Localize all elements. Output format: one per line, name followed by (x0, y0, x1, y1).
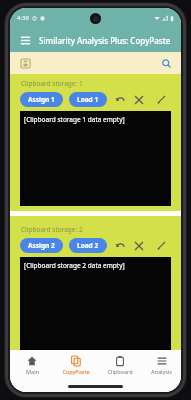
button[interactable]: [Clipboard storage 2 data empty] (20, 257, 171, 350)
staticText: 4:36 (17, 14, 29, 22)
staticText: Clipboard storage: 2 (21, 225, 83, 234)
button[interactable]: Main (10, 354, 54, 377)
button[interactable]: Search (159, 56, 173, 70)
staticText: [Clipboard storage 1 data empty] (24, 115, 125, 124)
staticText: Assign 1 (28, 95, 55, 104)
button[interactable]: Assign 2 (20, 238, 63, 253)
button[interactable]: CopyPaste (54, 354, 98, 377)
button[interactable]: Undo (114, 239, 127, 252)
button[interactable]: Clear (131, 238, 146, 253)
staticText: Analysis (151, 368, 172, 375)
button[interactable]: Analysis (142, 354, 181, 377)
staticText: [Clipboard storage 2 data empty] (24, 261, 125, 270)
staticText: Main (26, 368, 39, 375)
button[interactable]: Edit (154, 238, 169, 253)
staticText: Assign 2 (28, 241, 55, 250)
staticText: Load 1 (77, 95, 99, 104)
button[interactable]: Clear (131, 92, 146, 107)
button[interactable]: Load 2 (69, 238, 107, 253)
button[interactable]: Load 1 (69, 92, 107, 107)
button[interactable]: Assign 1 (20, 92, 63, 107)
button[interactable]: [Clipboard storage 1 data empty] (20, 111, 171, 206)
button[interactable]: Undo (114, 93, 127, 106)
staticText: CopyPaste (62, 368, 90, 375)
button[interactable]: Edit (154, 92, 169, 107)
button[interactable]: Clipboard (98, 354, 142, 377)
button[interactable]: Open navigation menu (15, 30, 35, 50)
staticText: Load 2 (77, 241, 99, 250)
staticText: Clipboard storage: 1 (21, 79, 83, 88)
staticText: Similarity Analysis Plus: CopyPaste (39, 35, 171, 46)
staticText: Clipboard (107, 368, 133, 375)
button[interactable]: Save (18, 56, 32, 70)
